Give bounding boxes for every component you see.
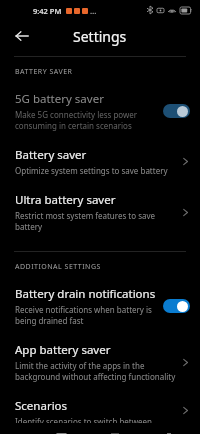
staticText: Ultra battery saver: [15, 192, 116, 208]
staticText: BATTERY SAVER: [15, 67, 73, 77]
button[interactable]: [163, 299, 190, 313]
button[interactable]: Ultra battery saver: [0, 187, 200, 243]
staticText: Restrict most system features to save ba…: [15, 210, 156, 232]
staticText: ADDITIONAL SETTINGS: [15, 262, 101, 272]
staticText: …: [90, 5, 97, 16]
staticText: Scenarios: [15, 398, 68, 414]
staticText: Identify scenarios to switch between bat…: [15, 416, 153, 423]
staticText: Settings: [73, 27, 127, 46]
staticText: 9:42 PM: [33, 6, 62, 16]
staticText: Optimize system settings to save battery: [15, 165, 168, 176]
staticText: Battery saver: [15, 147, 87, 163]
staticText: Battery drain notifications: [15, 286, 156, 302]
staticText: Make 5G connectivity less power consumin…: [15, 109, 138, 131]
button[interactable]: Battery saver: [0, 142, 200, 187]
button[interactable]: Battery drain notifications: [0, 281, 200, 337]
button[interactable]: Scenarios: [0, 393, 200, 434]
staticText: App battery saver: [15, 342, 111, 358]
button[interactable]: App battery saver: [0, 337, 200, 393]
staticText: 5G battery saver: [15, 91, 104, 107]
staticText: Limit the activity of the apps in the ba…: [15, 360, 176, 382]
button[interactable]: 5G battery saver: [0, 86, 200, 142]
button[interactable]: [163, 104, 190, 118]
button[interactable]: Back: [8, 22, 36, 50]
staticText: Receive notifications when battery is be…: [15, 304, 152, 326]
